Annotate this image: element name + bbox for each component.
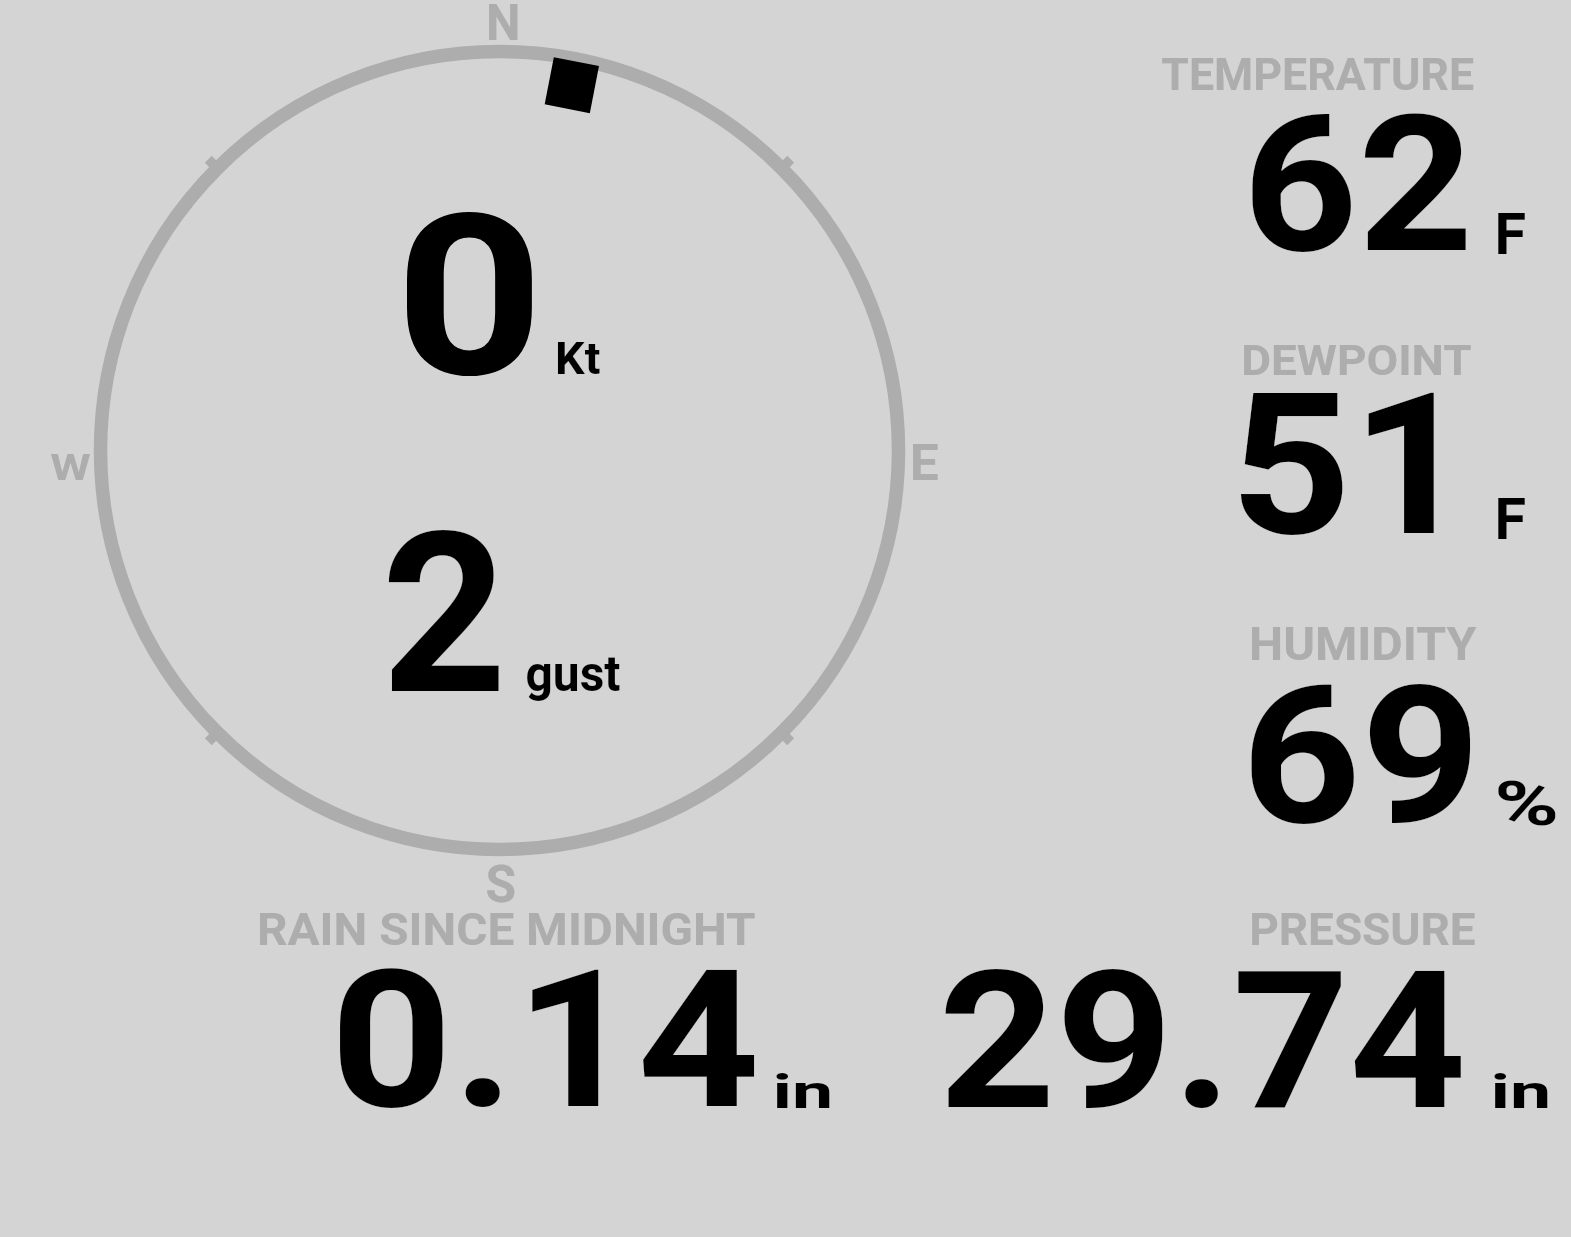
button[interactable]: Rain since midnight 0.14 inches xyxy=(240,900,860,1125)
button[interactable]: Dew point 51 degrees F xyxy=(1120,320,1560,555)
button[interactable]: Wind 0 knots, gusting 2, direction north xyxy=(20,10,960,900)
button[interactable]: Temperature 62 degrees F xyxy=(1120,30,1560,270)
button[interactable]: Humidity 69 percent xyxy=(1120,600,1560,840)
button[interactable]: Pressure 29.74 inches xyxy=(900,900,1560,1125)
